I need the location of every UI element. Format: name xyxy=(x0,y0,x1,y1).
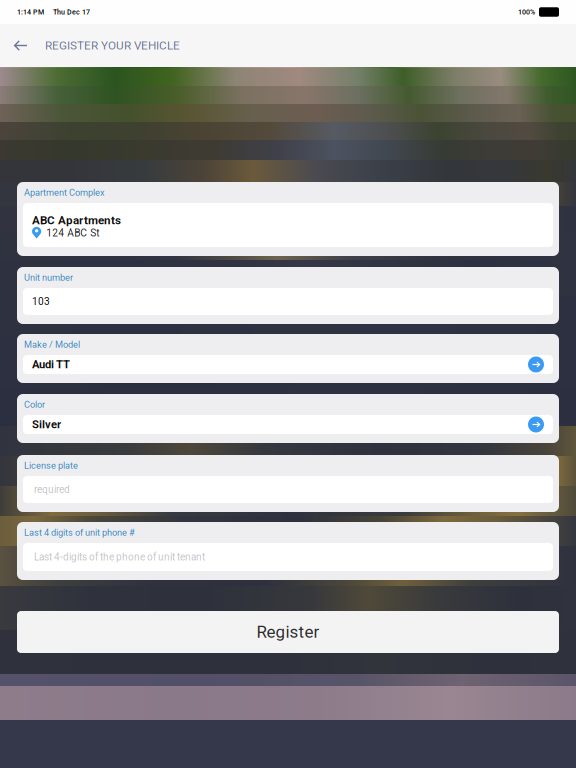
staticText: REGISTER YOUR VEHICLE xyxy=(45,39,180,52)
staticText: required xyxy=(34,484,70,495)
staticText: Thu Dec 17 xyxy=(53,8,90,16)
staticText: 103 xyxy=(32,296,50,307)
staticText: Apartment Complex xyxy=(24,187,105,198)
staticText: 100% xyxy=(518,8,535,16)
staticText: 1:14 PM xyxy=(17,8,44,16)
button[interactable]: Register xyxy=(17,611,559,653)
button[interactable]: Back xyxy=(6,30,36,60)
staticText: Last 4 digits of unit phone # xyxy=(24,527,135,538)
staticText: Last 4-digits of the phone of unit tenan… xyxy=(34,551,205,563)
staticText: Register xyxy=(256,622,319,642)
staticText: Audi TT xyxy=(32,358,70,371)
button[interactable]: REGISTER YOUR VEHICLE xyxy=(45,39,180,52)
staticText: ABC Apartments xyxy=(32,213,121,227)
button[interactable]: Color xyxy=(17,394,559,443)
staticText: License plate xyxy=(24,460,78,471)
staticText: Make / Model xyxy=(24,339,80,350)
staticText: Color xyxy=(24,399,45,410)
button[interactable]: Apartment Complex xyxy=(17,182,559,256)
button[interactable]: Make / Model xyxy=(17,334,559,383)
staticText: Silver xyxy=(32,418,61,431)
staticText: 124 ABC St xyxy=(46,227,99,239)
staticText: Unit number xyxy=(24,272,73,283)
